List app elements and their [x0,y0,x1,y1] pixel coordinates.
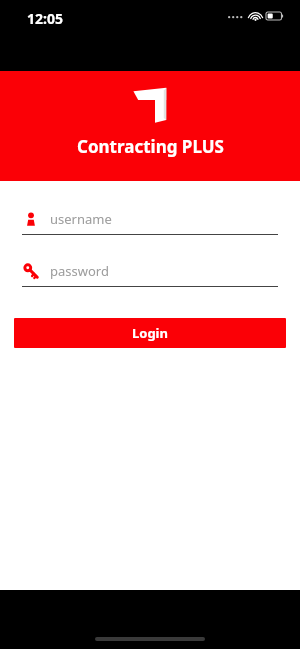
button[interactable]: Login [14,318,286,348]
staticText: password [50,262,109,280]
staticText: username [50,210,112,228]
button[interactable]: password [22,262,278,287]
other: Home indicator [95,637,205,641]
staticText: Login [132,324,168,342]
staticText: Contracting PLUS [77,135,224,158]
staticText: 12:05 [27,9,63,28]
button[interactable]: username [22,210,278,235]
